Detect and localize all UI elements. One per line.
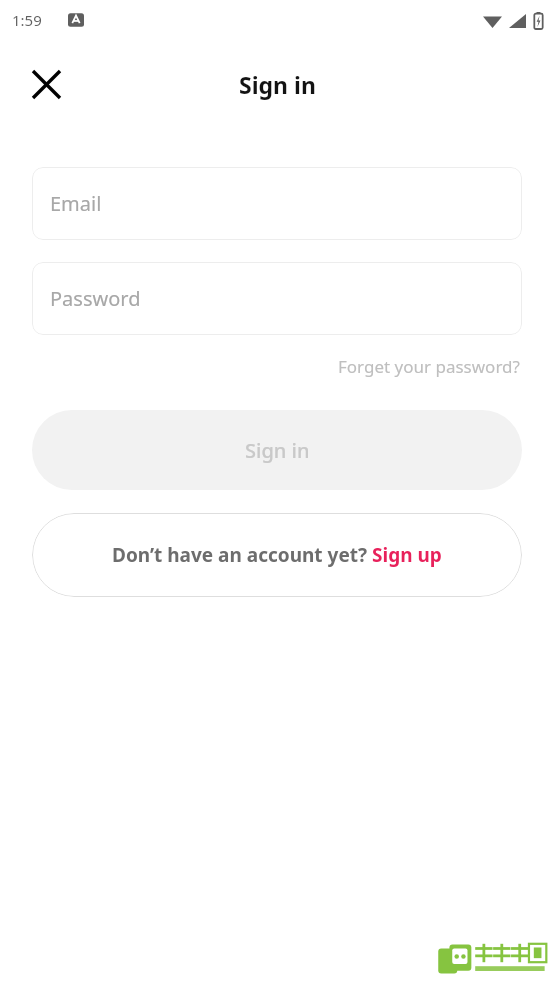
button[interactable]: Forget your password? <box>336 353 522 380</box>
staticText: Forget your password? <box>338 355 520 378</box>
button[interactable]: Sign in <box>32 410 522 490</box>
staticText: 1:59 <box>12 10 42 30</box>
button[interactable]: Don’t have an account yet? Sign up <box>32 513 522 597</box>
button[interactable]: Password <box>32 262 522 335</box>
button[interactable]: Close <box>22 60 70 108</box>
staticText: Sign in <box>239 69 316 100</box>
button[interactable]: Email <box>32 167 522 240</box>
staticText: Email <box>50 190 102 217</box>
staticText: Sign in <box>245 437 310 464</box>
staticText: Password <box>50 285 141 312</box>
staticText: Don’t have an account yet? Sign up <box>112 542 442 568</box>
